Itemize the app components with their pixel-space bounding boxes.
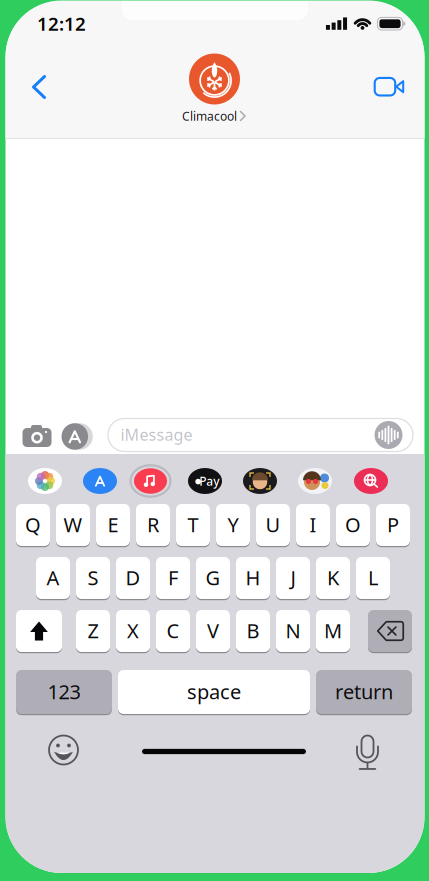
button[interactable]: [354, 468, 388, 494]
staticText: F: [168, 564, 178, 591]
staticText: B: [246, 617, 259, 644]
staticText: H: [245, 564, 260, 591]
staticText: I: [309, 511, 316, 538]
button[interactable]: space: [118, 670, 310, 715]
button[interactable]: S: [76, 557, 110, 600]
staticText: O: [345, 511, 361, 538]
staticText: K: [327, 564, 339, 591]
button[interactable]: M: [316, 610, 350, 653]
button[interactable]: [22, 424, 52, 447]
staticText: T: [187, 511, 198, 538]
button[interactable]: U: [256, 504, 290, 547]
staticText: Q: [25, 511, 41, 538]
staticText: N: [285, 617, 300, 644]
staticText: Z: [87, 617, 98, 644]
button[interactable]: Pay: [188, 468, 222, 494]
button[interactable]: Z: [76, 610, 110, 653]
button[interactable]: 123: [16, 670, 112, 715]
staticText: E: [107, 511, 118, 538]
button[interactable]: G: [196, 557, 230, 600]
staticText: Y: [227, 511, 238, 538]
button[interactable]: [352, 734, 383, 770]
staticText: L: [368, 564, 378, 591]
staticText: J: [290, 564, 295, 591]
staticText: W: [63, 511, 82, 538]
staticText: V: [207, 617, 219, 644]
button[interactable]: N: [276, 610, 310, 653]
staticText: Climacool: [182, 108, 237, 124]
staticText: 123: [47, 678, 80, 705]
button[interactable]: W: [56, 504, 90, 547]
staticText: P: [387, 511, 399, 538]
button[interactable]: [298, 468, 332, 494]
button[interactable]: K: [316, 557, 350, 600]
button[interactable]: V: [196, 610, 230, 653]
button[interactable]: I: [296, 504, 330, 547]
button[interactable]: R: [136, 504, 170, 547]
button[interactable]: [188, 53, 240, 105]
button[interactable]: D: [116, 557, 150, 600]
button[interactable]: [368, 610, 412, 653]
staticText: U: [265, 511, 280, 538]
button[interactable]: return: [316, 670, 412, 715]
button[interactable]: [28, 468, 62, 494]
button[interactable]: Climacool: [182, 108, 245, 124]
button[interactable]: B: [236, 610, 270, 653]
button[interactable]: H: [236, 557, 270, 600]
staticText: C: [166, 617, 179, 644]
button[interactable]: [243, 468, 277, 494]
button[interactable]: P: [376, 504, 410, 547]
button[interactable]: C: [156, 610, 190, 653]
button[interactable]: O: [336, 504, 370, 547]
button[interactable]: [48, 735, 78, 765]
button[interactable]: [83, 468, 117, 494]
staticText: M: [324, 617, 342, 644]
button[interactable]: iMessage: [108, 418, 413, 451]
staticText: A: [46, 564, 59, 591]
button[interactable]: [0, 0, 429, 881]
button[interactable]: [16, 610, 62, 653]
button[interactable]: J: [276, 557, 310, 600]
staticText: Pay: [199, 473, 219, 489]
button[interactable]: E: [96, 504, 130, 547]
staticText: S: [87, 564, 98, 591]
button[interactable]: A: [36, 557, 70, 600]
button[interactable]: X: [116, 610, 150, 653]
button[interactable]: [130, 465, 170, 497]
staticText: 12:12: [37, 11, 86, 36]
staticText: space: [187, 678, 241, 705]
staticText: G: [205, 564, 220, 591]
button[interactable]: L: [356, 557, 390, 600]
staticText: X: [127, 617, 139, 644]
staticText: return: [335, 678, 393, 705]
button[interactable]: T: [176, 504, 210, 547]
button[interactable]: Q: [16, 504, 50, 547]
button[interactable]: [375, 78, 404, 96]
staticText: R: [147, 511, 159, 538]
button[interactable]: [60, 423, 93, 450]
button[interactable]: Y: [216, 504, 250, 547]
staticText: D: [125, 564, 140, 591]
button[interactable]: F: [156, 557, 190, 600]
staticText: iMessage: [120, 424, 192, 445]
